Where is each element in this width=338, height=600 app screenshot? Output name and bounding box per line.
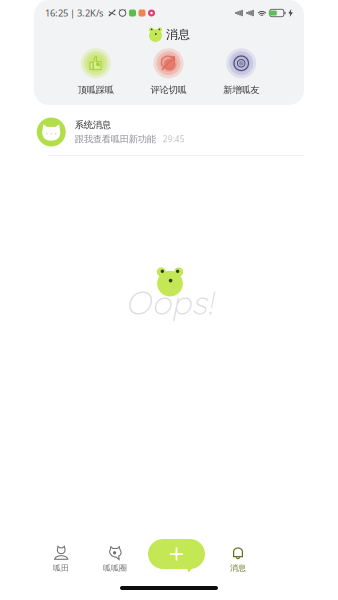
staticText: 新增呱友 [223,84,259,96]
staticText: 消息 [166,27,190,42]
staticText: 29:45 [163,134,185,144]
staticText: 跟我查看呱田新功能 [75,133,156,145]
staticText: 呱田 [53,563,69,573]
button[interactable]: 评论切呱 [132,48,205,96]
staticText: 16:25 | 3.2K/s [45,7,103,19]
button[interactable]: 呱呱圈 [88,543,142,575]
button[interactable]: 呱田 [34,543,88,575]
staticText: 消息 [230,563,246,573]
staticText: Oops! [125,281,212,323]
button[interactable]: 新建 [148,536,205,572]
staticText: 呱呱圈 [103,563,127,573]
button[interactable]: 顶呱踩呱 [59,48,132,96]
button[interactable]: 新增呱友 [205,48,277,96]
staticText: 顶呱踩呱 [78,84,114,96]
button[interactable]: 系统消息 [34,111,304,153]
staticText: 评论切呱 [150,84,186,96]
button[interactable]: 消息 [211,543,265,575]
staticText: 系统消息 [75,119,111,130]
